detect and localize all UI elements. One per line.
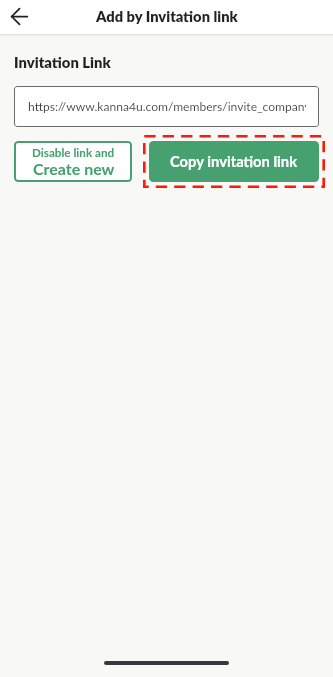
staticText: Disable link and — [32, 145, 115, 159]
staticText: https://www.kanna4u.com/members/invite_c… — [28, 99, 306, 114]
staticText: Invitation Link — [14, 53, 111, 71]
staticText: Create new — [33, 159, 115, 178]
button[interactable]: Disable link and — [14, 141, 132, 182]
staticText: Copy invitation link — [170, 152, 298, 170]
button[interactable]: Copy invitation link — [149, 141, 319, 182]
button[interactable]: Back — [0, 0, 38, 34]
staticText: Add by Invitation link — [96, 7, 238, 25]
button[interactable]: https://www.kanna4u.com/members/invite_c… — [14, 86, 319, 127]
